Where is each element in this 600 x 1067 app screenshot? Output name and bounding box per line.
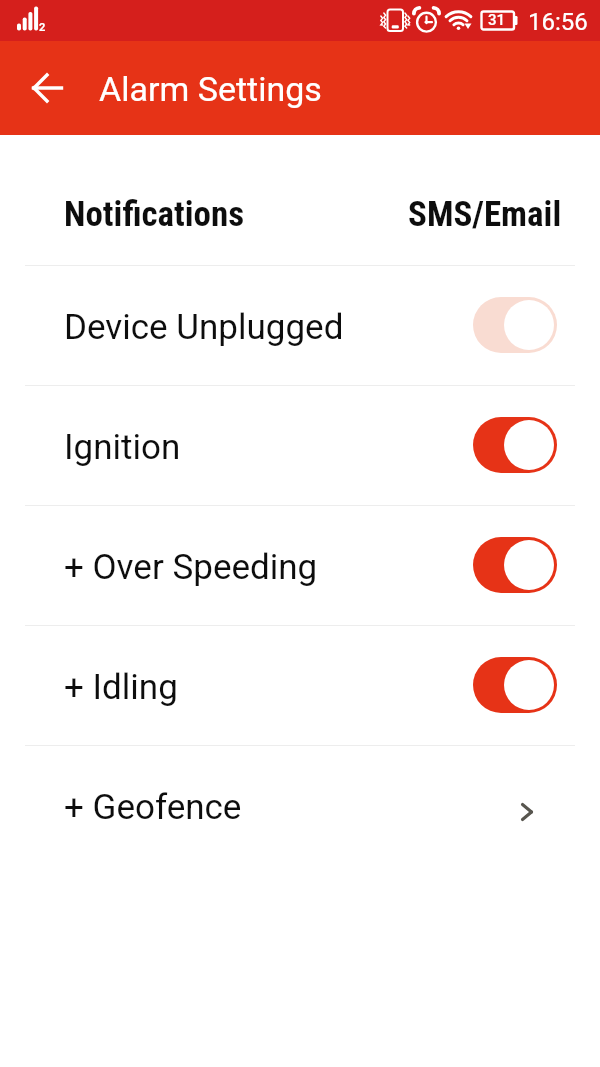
button[interactable]: + Over Speeding bbox=[0, 505, 600, 625]
button[interactable]: Device Unplugged bbox=[0, 265, 600, 385]
button[interactable]: Ignition bbox=[0, 385, 600, 505]
staticText: 16:56 bbox=[528, 8, 588, 36]
button[interactable]: Ignition toggle bbox=[473, 417, 557, 473]
button[interactable]: + Idling bbox=[0, 625, 600, 745]
button[interactable]: + Over Speeding toggle bbox=[473, 537, 557, 593]
staticText: SMS/Email bbox=[408, 194, 562, 235]
button[interactable]: Back bbox=[22, 63, 72, 113]
staticText: + Over Speeding bbox=[64, 547, 318, 588]
staticText: Device Unplugged bbox=[64, 307, 344, 348]
button[interactable]: Device Unplugged toggle bbox=[473, 297, 557, 353]
staticText: + Geofence bbox=[64, 787, 242, 828]
staticText: 31 bbox=[488, 11, 506, 29]
staticText: Ignition bbox=[64, 427, 181, 468]
staticText: 2 bbox=[39, 21, 46, 34]
button[interactable]: + Geofence bbox=[0, 745, 600, 865]
staticText: Alarm Settings bbox=[99, 69, 322, 109]
staticText: Notifications bbox=[64, 194, 245, 235]
staticText: + Idling bbox=[64, 667, 178, 708]
button[interactable]: Open Geofence bbox=[509, 794, 545, 830]
button[interactable]: + Idling toggle bbox=[473, 657, 557, 713]
